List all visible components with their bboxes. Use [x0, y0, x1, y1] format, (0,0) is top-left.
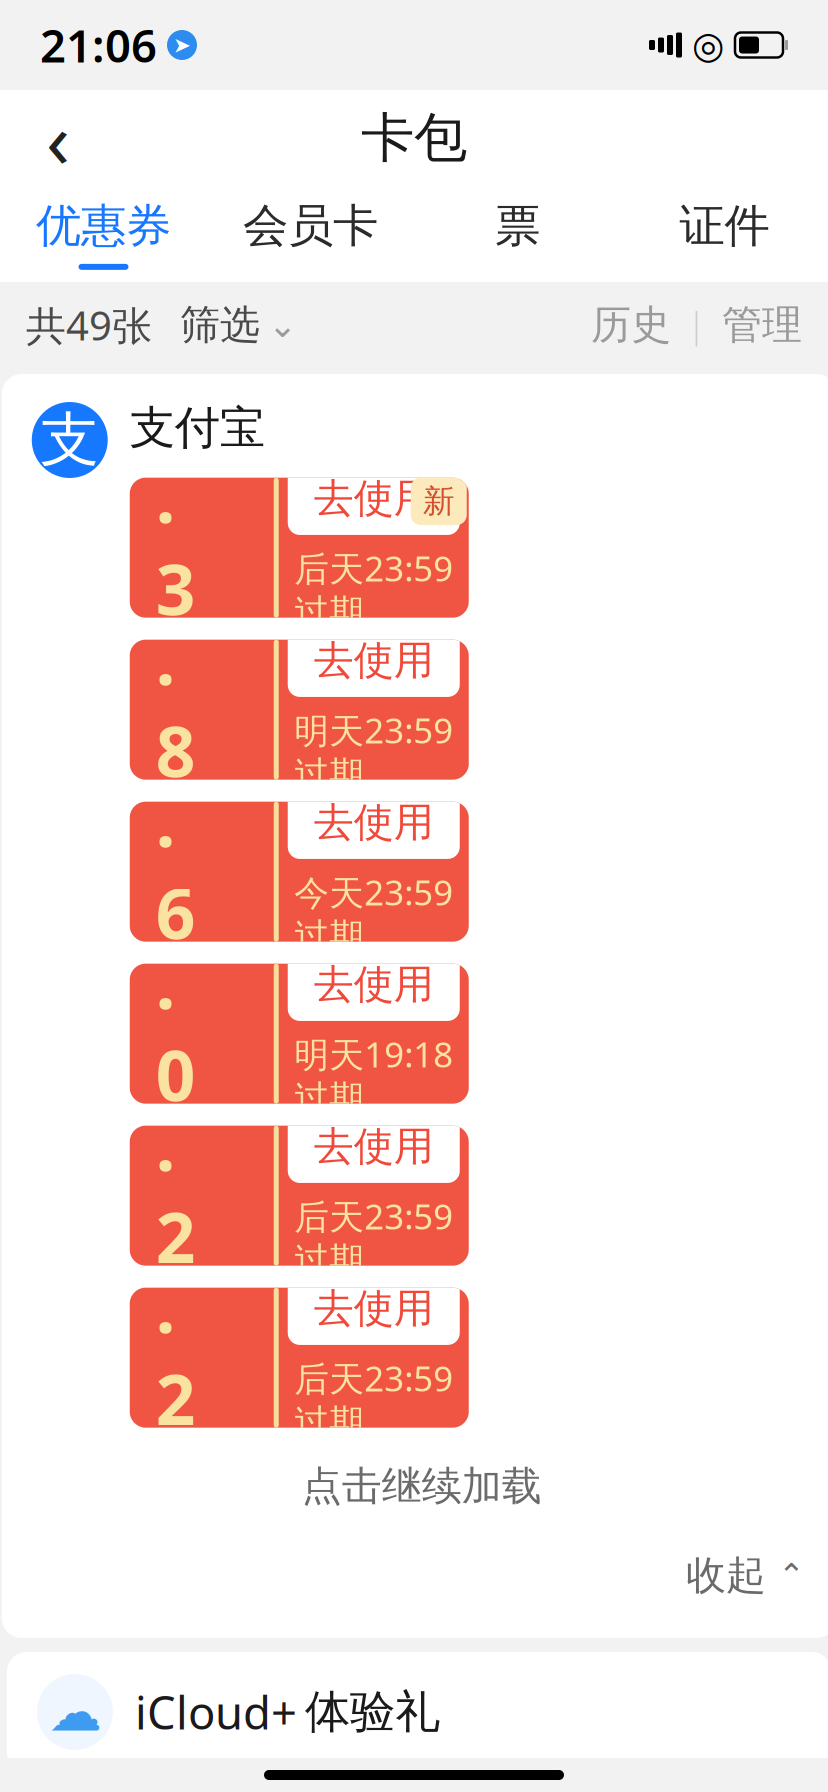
- button[interactable]: 管理: [722, 290, 802, 359]
- button[interactable]: 历史: [591, 290, 671, 359]
- staticText: iCloud+: [135, 1682, 297, 1742]
- button[interactable]: 优惠券: [0, 186, 207, 282]
- button[interactable]: 会员卡: [207, 186, 414, 282]
- button[interactable]: 证件: [621, 186, 828, 282]
- staticText: 点击继续加载: [302, 1462, 542, 1511]
- staticText: 21:06: [40, 15, 157, 75]
- staticText: 新: [423, 482, 455, 521]
- staticText: 去使用: [314, 474, 434, 523]
- staticText: 3.66: [156, 682, 196, 1050]
- staticText: ☁: [48, 1682, 101, 1742]
- button[interactable]: 0.2: [130, 1126, 469, 1266]
- staticText: 管理: [722, 300, 802, 349]
- button[interactable]: 3.66: [130, 802, 469, 942]
- staticText: 证件: [679, 198, 769, 254]
- staticText: 明天23:59过期: [294, 707, 453, 795]
- button[interactable]: 收起: [686, 1539, 805, 1612]
- button[interactable]: 票: [414, 186, 621, 282]
- staticText: 支: [40, 404, 99, 476]
- staticText: ➤: [173, 33, 191, 57]
- button[interactable]: ☁: [7, 1652, 828, 1772]
- staticText: 卡包: [361, 105, 467, 171]
- staticText: 去使用: [314, 798, 434, 847]
- button[interactable]: 0.04: [130, 964, 469, 1104]
- staticText: 明天19:18过期: [294, 1031, 453, 1119]
- staticText: 支付宝: [130, 400, 265, 456]
- button[interactable]: 0.29: [130, 1288, 469, 1428]
- button[interactable]: 点击继续加载: [4, 1444, 828, 1529]
- button[interactable]: 筛选: [152, 290, 297, 359]
- staticText: 0.29: [156, 1168, 196, 1536]
- staticText: 筛选: [180, 300, 260, 349]
- staticText: 去使用: [314, 1122, 434, 1171]
- staticText: 后天23:59过期: [294, 1193, 453, 1281]
- button[interactable]: 4.3: [130, 478, 469, 618]
- staticText: 体验礼: [305, 1684, 440, 1740]
- staticText: 优惠券: [36, 198, 171, 254]
- staticText: 票: [495, 198, 540, 254]
- staticText: ⌄: [268, 305, 297, 345]
- staticText: 后天23:59过期: [294, 545, 453, 633]
- button[interactable]: 3.8: [130, 640, 469, 780]
- staticText: 去使用: [314, 960, 434, 1009]
- button[interactable]: 返回: [18, 98, 98, 178]
- staticText: 元: [201, 398, 236, 441]
- staticText: 4.3: [156, 358, 196, 634]
- staticText: ◎: [692, 24, 725, 66]
- staticText: ⌃: [778, 1557, 805, 1593]
- staticText: 去使用: [314, 1284, 434, 1333]
- staticText: 后天23:59过期: [294, 1355, 453, 1443]
- staticText: 历史: [591, 300, 671, 349]
- staticText: 共49张: [26, 298, 152, 351]
- staticText: ‹: [46, 87, 70, 189]
- staticText: 去使用: [314, 636, 434, 685]
- staticText: 0.2: [156, 1006, 196, 1282]
- staticText: 今天23:59过期: [294, 869, 453, 957]
- staticText: 收起: [686, 1551, 766, 1600]
- staticText: 会员卡: [243, 198, 378, 254]
- staticText: 0.04: [156, 844, 196, 1212]
- staticText: 3.8: [156, 520, 196, 796]
- staticText: |: [687, 302, 706, 348]
